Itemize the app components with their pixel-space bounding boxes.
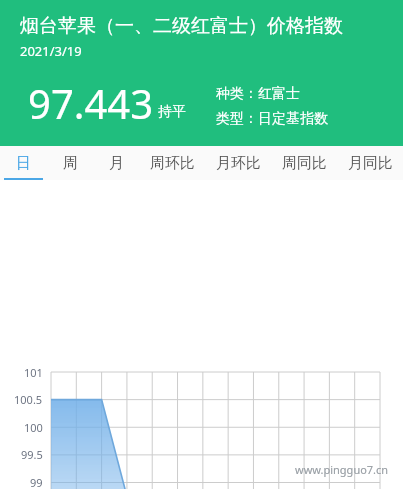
staticText: www.pingguo7.cn bbox=[295, 462, 389, 477]
staticText: 日 bbox=[16, 154, 31, 173]
button[interactable]: 周同比 bbox=[271, 146, 337, 180]
staticText: 种类：红富士 bbox=[216, 85, 300, 103]
staticText: 2021/3/19 bbox=[20, 42, 82, 60]
staticText: 月 bbox=[109, 154, 124, 173]
staticText: 周环比 bbox=[150, 154, 195, 173]
button[interactable]: 月环比 bbox=[205, 146, 271, 180]
staticText: 烟台苹果（一、二级红富士）价格指数 bbox=[20, 14, 343, 38]
button[interactable]: 周 bbox=[47, 146, 93, 180]
staticText: 周同比 bbox=[282, 154, 327, 173]
staticText: 月环比 bbox=[216, 154, 261, 173]
button[interactable]: 月同比 bbox=[337, 146, 403, 180]
staticText: 97.443 bbox=[28, 76, 154, 130]
staticText: 类型：日定基指数 bbox=[216, 110, 328, 128]
staticText: 持平 bbox=[158, 103, 186, 121]
button[interactable]: 周环比 bbox=[139, 146, 205, 180]
staticText: 月同比 bbox=[348, 154, 393, 173]
button[interactable]: 月 bbox=[93, 146, 139, 180]
staticText: 周 bbox=[63, 154, 78, 173]
button[interactable]: 日 bbox=[0, 146, 47, 180]
